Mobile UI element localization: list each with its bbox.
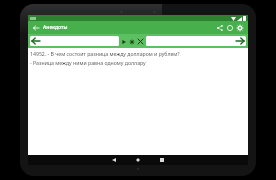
button[interactable]: Play [121,39,127,45]
button[interactable]: Recent apps [150,155,174,165]
button[interactable]: Favorite [129,39,135,45]
button[interactable]: Share [215,23,225,33]
button[interactable]: Settings [235,23,245,33]
staticText: Анекдоты [43,24,68,31]
button[interactable]: Refresh [225,23,235,33]
button[interactable]: Random [137,38,144,45]
button[interactable]: Next [146,36,246,46]
button[interactable]: Home [126,155,150,165]
staticText: 14952. - В чем состоит разница между дол… [30,50,180,57]
staticText: - Разница между ними равна одному доллар… [30,59,146,66]
button[interactable]: Previous [30,36,119,46]
button[interactable]: Back [102,155,126,165]
button[interactable]: Navigate up [31,23,40,32]
